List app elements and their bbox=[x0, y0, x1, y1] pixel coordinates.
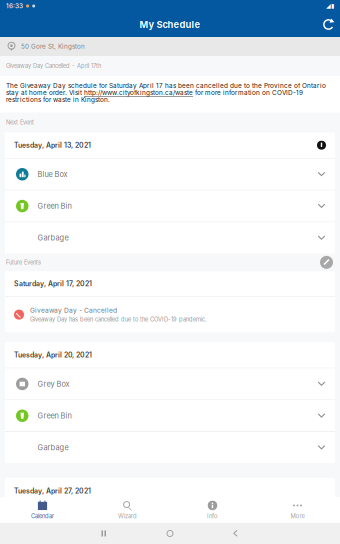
staticText: Giveaway Day has been cancelled due to t… bbox=[30, 316, 207, 323]
staticText: Tuesday, April 27, 2021 bbox=[14, 487, 91, 495]
staticText: Blue Box bbox=[37, 170, 67, 179]
staticText: Grey Box bbox=[37, 379, 69, 388]
button[interactable]: 50 Gore St, Kingston bbox=[0, 37, 340, 56]
button[interactable]: Blue Box bbox=[5, 159, 335, 190]
staticText: Green Bin bbox=[37, 411, 71, 420]
staticText: 50 Gore St, Kingston bbox=[21, 43, 85, 50]
staticText: Garbage bbox=[37, 443, 68, 452]
staticText: The Giveaway Day schedule for Saturday A… bbox=[6, 82, 326, 103]
button[interactable]: Back bbox=[226, 523, 244, 543]
staticText: ◢▮ bbox=[326, 2, 334, 9]
button[interactable]: Giveaway Day - Cancelled bbox=[5, 297, 335, 332]
staticText: Wizard bbox=[118, 512, 137, 520]
button[interactable]: Calendar bbox=[0, 497, 85, 523]
button[interactable]: Wizard bbox=[85, 497, 170, 523]
button[interactable]: Home bbox=[161, 524, 179, 542]
button[interactable]: Recents bbox=[95, 524, 113, 542]
staticText: Tuesday, April 20, 2021 bbox=[14, 351, 92, 359]
button[interactable]: Garbage bbox=[5, 222, 335, 253]
staticText: Next Event bbox=[6, 119, 34, 126]
staticText: Tuesday, April 13, 2021 bbox=[14, 141, 91, 149]
staticText: My Schedule bbox=[139, 19, 200, 30]
button[interactable]: Grey Box bbox=[5, 368, 335, 399]
button[interactable]: Green Bin bbox=[5, 191, 335, 222]
staticText: 16:33 bbox=[6, 2, 23, 10]
staticText: Saturday, April 17, 2021 bbox=[14, 280, 92, 288]
staticText: Giveaway Day Cancelled - April 17th bbox=[6, 62, 101, 69]
button[interactable]: Green Bin bbox=[5, 400, 335, 431]
button[interactable]: More bbox=[255, 497, 340, 523]
button[interactable]: Refresh bbox=[317, 13, 340, 36]
staticText: More bbox=[290, 512, 304, 520]
staticText: Calendar bbox=[31, 512, 54, 520]
staticText: Giveaway Day - Cancelled bbox=[30, 306, 117, 314]
staticText: Future Events bbox=[6, 259, 41, 266]
staticText: Green Bin bbox=[37, 201, 71, 210]
staticText: Garbage bbox=[37, 233, 68, 242]
button[interactable]: Garbage bbox=[5, 432, 335, 463]
staticText: Info bbox=[207, 512, 218, 520]
button[interactable]: Info bbox=[170, 497, 255, 523]
